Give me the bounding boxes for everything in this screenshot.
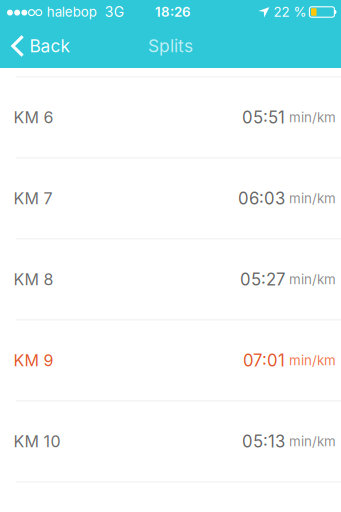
staticText: min/km bbox=[289, 190, 336, 206]
staticText: KM 7 bbox=[13, 189, 52, 208]
staticText: min/km bbox=[289, 271, 336, 287]
staticText: 18:26 bbox=[155, 4, 191, 20]
staticText: min/km bbox=[289, 433, 336, 449]
staticText: halebop bbox=[47, 4, 97, 20]
button[interactable]: KM 8 bbox=[0, 240, 341, 319]
button[interactable]: KM 10 bbox=[0, 402, 341, 481]
button[interactable]: KM 7 bbox=[0, 159, 341, 238]
staticText: KM 8 bbox=[13, 270, 53, 289]
staticText: Back bbox=[29, 35, 70, 56]
button[interactable]: KM 9 bbox=[0, 321, 341, 400]
staticText: 22 % bbox=[273, 4, 306, 20]
staticText: KM 6 bbox=[13, 108, 53, 127]
button[interactable]: KM 6 bbox=[0, 78, 341, 157]
staticText: Splits bbox=[148, 35, 193, 56]
staticText: 3G bbox=[105, 3, 124, 20]
staticText: 06:03 bbox=[238, 188, 285, 209]
staticText: 05:51 bbox=[242, 107, 285, 128]
button[interactable]: Back bbox=[0, 24, 80, 68]
staticText: KM 10 bbox=[13, 432, 60, 451]
staticText: min/km bbox=[289, 352, 336, 368]
staticText: 07:01 bbox=[243, 350, 285, 371]
staticText: min/km bbox=[289, 109, 336, 125]
staticText: KM 9 bbox=[13, 351, 53, 370]
staticText: 05:27 bbox=[240, 269, 285, 290]
staticText: 05:13 bbox=[242, 431, 285, 452]
